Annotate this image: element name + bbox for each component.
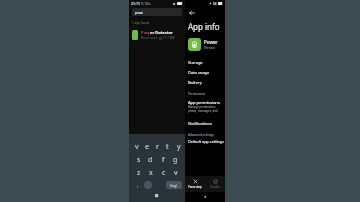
staticText: er Detector [150,30,173,35]
staticText: %.1K/s [141,2,151,6]
staticText: 1 app found [132,21,150,25]
staticText: 54 [213,2,217,6]
button[interactable]: r [153,140,162,153]
staticText: Notifications [188,121,212,126]
staticText: Version 2.0.10 [204,46,222,50]
staticText: Force stop [188,185,202,189]
button[interactable]: e [142,140,151,153]
staticText: Data usage [188,70,210,75]
button[interactable]: g [171,153,180,166]
staticText: Advanced settings [188,133,214,137]
button[interactable]: Back [203,195,207,199]
staticText: Default app settings [188,139,225,144]
button[interactable]: Notifications [185,118,225,128]
staticText: Power Dete [204,39,222,45]
button[interactable]: c [159,166,168,179]
staticText: Manage permissions related to [188,105,222,109]
staticText: 3 [152,137,154,140]
staticText: c [162,168,166,178]
button[interactable]: Comma [134,181,142,189]
button[interactable]: Data usage [185,67,225,77]
staticText: Disable [210,185,220,189]
staticText: Pow [141,30,150,35]
staticText: Never used [141,36,157,40]
staticText: 1 [136,137,138,140]
staticText: 2 [144,137,146,140]
button[interactable]: Battery [185,77,225,87]
button[interactable]: Force stop [185,176,205,192]
button[interactable]: s [134,153,143,166]
staticText: phone, messages, and storage [188,109,222,113]
staticText: z [137,168,141,178]
staticText: App info [188,21,220,32]
button[interactable]: v [171,166,180,179]
staticText: 6 [176,137,178,140]
staticText: v [174,168,178,178]
button[interactable]: f [159,153,168,166]
button[interactable]: z [134,166,143,179]
button[interactable]: Back [187,8,197,18]
staticText: 5 [168,137,170,140]
button[interactable]: Power Dete [185,38,225,51]
staticText: r [156,142,159,152]
staticText: Permissions [188,92,206,96]
staticText: App permissions [188,100,220,105]
staticText: Engl [170,183,178,188]
button[interactable]: t [163,140,172,153]
staticText: e [145,142,149,152]
button[interactable]: Pow [129,28,185,42]
staticText: y [177,142,181,152]
staticText: v [135,142,139,152]
staticText: 17.7 MB [163,36,175,40]
staticText: f [162,155,165,165]
button[interactable]: Emoji [144,181,152,189]
staticText: pow [135,10,143,15]
button[interactable]: Search [166,181,182,189]
button[interactable]: Disable [205,176,225,192]
button[interactable]: v [132,140,141,153]
button[interactable]: Recents [155,194,159,198]
staticText: x [149,168,153,178]
button[interactable]: y [174,140,183,153]
button[interactable]: pow [132,8,182,16]
button[interactable]: App permissions [185,99,225,114]
staticText: Battery [188,80,202,85]
button[interactable]: Storage [185,57,225,67]
staticText: , [137,182,139,189]
staticText: s [137,155,141,165]
staticText: 21:11 [131,1,140,6]
button[interactable]: x [146,166,155,179]
staticText: d [148,155,153,165]
staticText: Storage [188,60,203,65]
staticText: g [173,155,178,165]
button[interactable]: d [146,153,155,166]
staticText: t [166,142,169,152]
staticText: 4 [160,137,162,140]
